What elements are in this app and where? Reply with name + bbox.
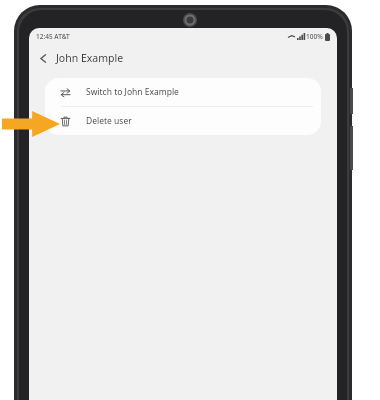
staticText: 12:45 AT&T [36, 32, 70, 41]
staticText: Switch to John Example [86, 86, 179, 98]
button[interactable]: Delete user [45, 107, 321, 135]
staticText: Delete user [86, 115, 132, 127]
staticText: 100% [306, 32, 323, 41]
button[interactable]: Switch to John Example [45, 78, 321, 106]
button[interactable]: Back [33, 48, 53, 68]
staticText: John Example [56, 51, 124, 65]
